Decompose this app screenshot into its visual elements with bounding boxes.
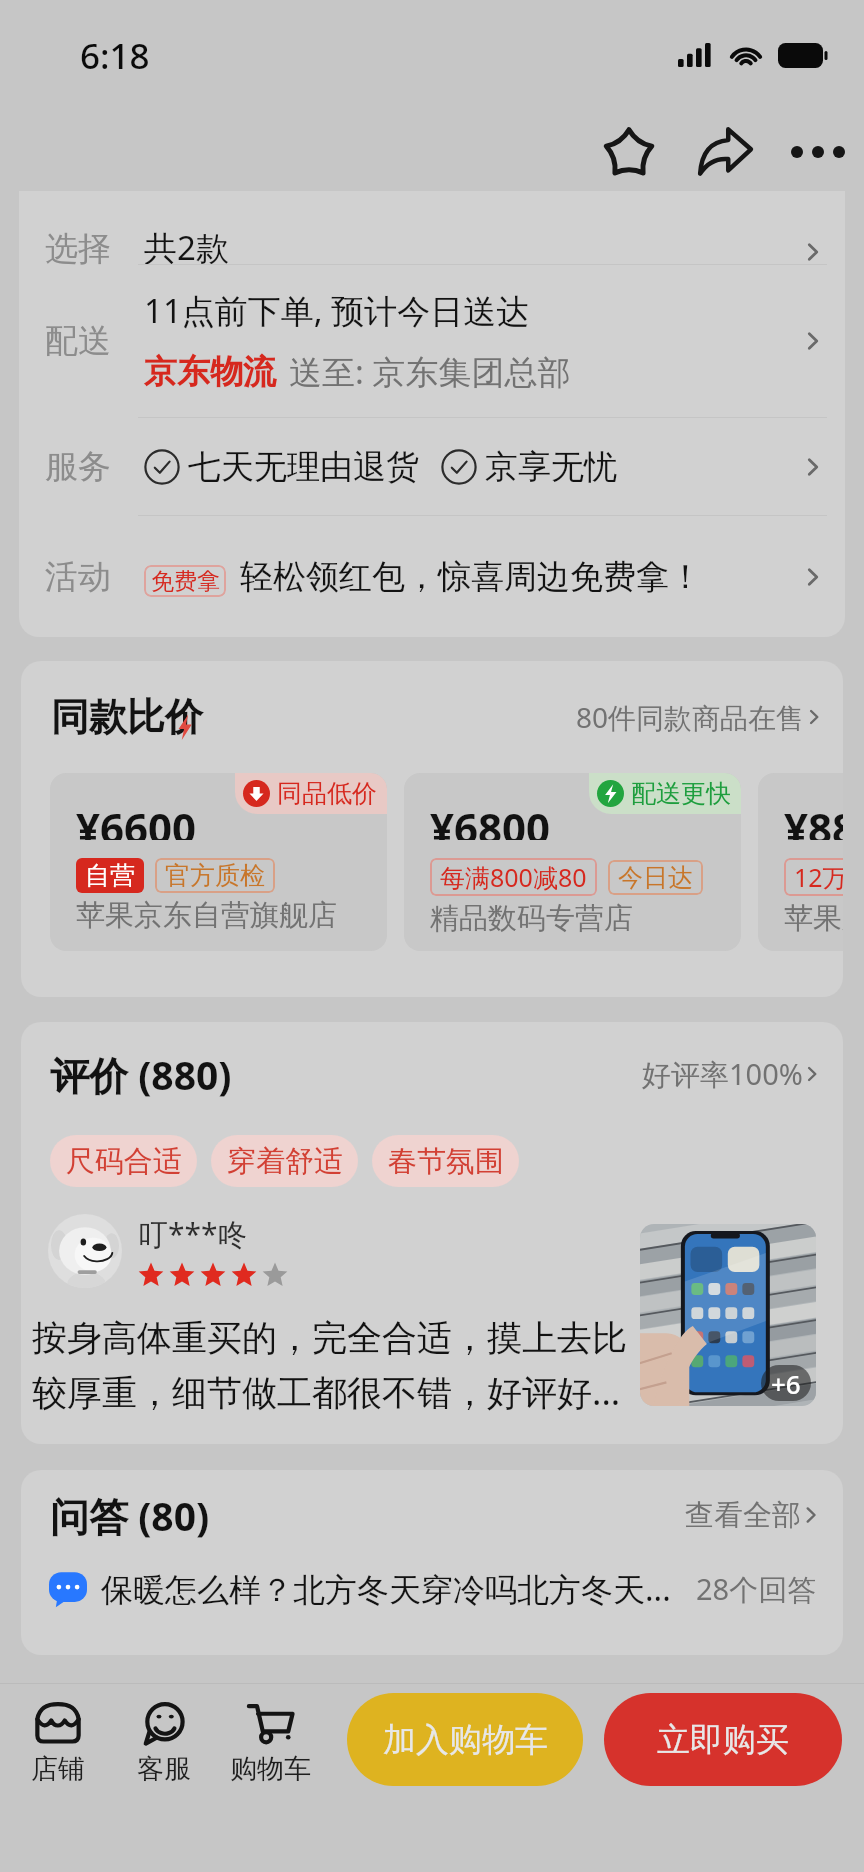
staticText: 好评率100% [642,1054,803,1094]
button[interactable]: 尺码合适 [50,1135,197,1187]
staticText: 保暖怎么样？北方冬天穿冷吗北方冬天... [101,1567,682,1611]
button[interactable]: 同款比价 [21,661,843,773]
button[interactable]: 保暖怎么样？北方冬天穿冷吗北方冬天... [21,1560,843,1618]
staticText: 苹果京东自营旗舰店 [76,897,337,934]
button[interactable]: 购物车 [224,1702,316,1786]
staticText: 选择 [45,228,111,270]
staticText: 11点前下单, 预计今日送达 [144,288,530,333]
staticText: 配送 [45,320,111,362]
staticText: ¥6800 [430,799,551,840]
button[interactable]: 问答 (80) [21,1470,843,1560]
staticText: 服务 [45,446,111,488]
staticText: 加入购物车 [383,1719,548,1761]
button[interactable]: More options [777,114,853,190]
button[interactable]: 立即购买 [604,1693,842,1786]
staticText: 轻松领红包，惊喜周边免费拿！ [240,556,702,598]
button[interactable]: 服务 [19,418,845,515]
staticText: 80件同款商品在售 [576,698,805,736]
staticText: 七天无理由退货 [188,446,419,488]
button[interactable]: 店铺 [12,1702,104,1786]
staticText: 查看全部 [685,1497,801,1534]
staticText: 官方质检 [165,860,265,891]
staticText: +6 [771,1366,801,1401]
staticText: 今日达 [618,862,693,893]
button[interactable]: 同品低价 [50,773,387,951]
button[interactable]: 配送更快 [404,773,741,951]
staticText: 同款比价 [51,693,203,741]
button[interactable]: ¥8800 [758,773,843,951]
staticText: ¥8800 [784,799,843,840]
staticText: 购物车 [230,1752,311,1786]
staticText: 12万+ [794,860,843,894]
button[interactable]: 活动 [19,516,845,637]
staticText: 春节氛围 [388,1143,504,1180]
staticText: 配送更快 [631,778,731,809]
staticText: 同品低价 [277,778,377,809]
staticText: 京东物流 [144,351,276,393]
staticText: 按身高体重买的，完全合适，摸上去比 [32,1316,627,1360]
staticText: 28个回答 [696,1569,817,1609]
staticText: 免费拿 [151,567,220,596]
button[interactable]: 评价 (880) [21,1022,843,1126]
staticText: 每满800减80 [440,860,587,894]
staticText: 苹果京东自营旗舰店 [784,900,843,937]
staticText: 6:18 [80,32,150,80]
button[interactable]: Favorite [591,114,667,190]
staticText: 店铺 [31,1752,85,1786]
staticText: 问答 (80) [50,1489,210,1542]
button[interactable]: 客服 [118,1702,210,1786]
staticText: 自营 [85,860,135,891]
button[interactable]: Share [687,114,763,190]
button[interactable]: 选择 [19,191,845,264]
button[interactable]: 配送 [19,265,845,417]
button[interactable]: Review photo [640,1224,816,1406]
staticText: 立即购买 [657,1719,789,1761]
staticText: 穿着舒适 [227,1143,343,1180]
staticText: 活动 [45,556,111,598]
staticText: 共2款 [144,225,229,270]
button[interactable]: 春节氛围 [372,1135,519,1187]
staticText: 较厚重，细节做工都很不错，好评好... [32,1368,621,1416]
staticText: 精品数码专营店 [430,900,633,937]
staticText: 评价 (880) [50,1048,232,1101]
staticText: 京享无忧 [485,446,617,488]
staticText: 客服 [137,1752,191,1786]
button[interactable]: 穿着舒适 [211,1135,358,1187]
staticText: 叮***咚 [138,1213,248,1254]
button[interactable]: 加入购物车 [347,1693,583,1786]
staticText: ¥6600 [76,799,197,840]
staticText: 尺码合适 [66,1143,182,1180]
staticText: 送至: 京东集团总部 [289,349,571,394]
